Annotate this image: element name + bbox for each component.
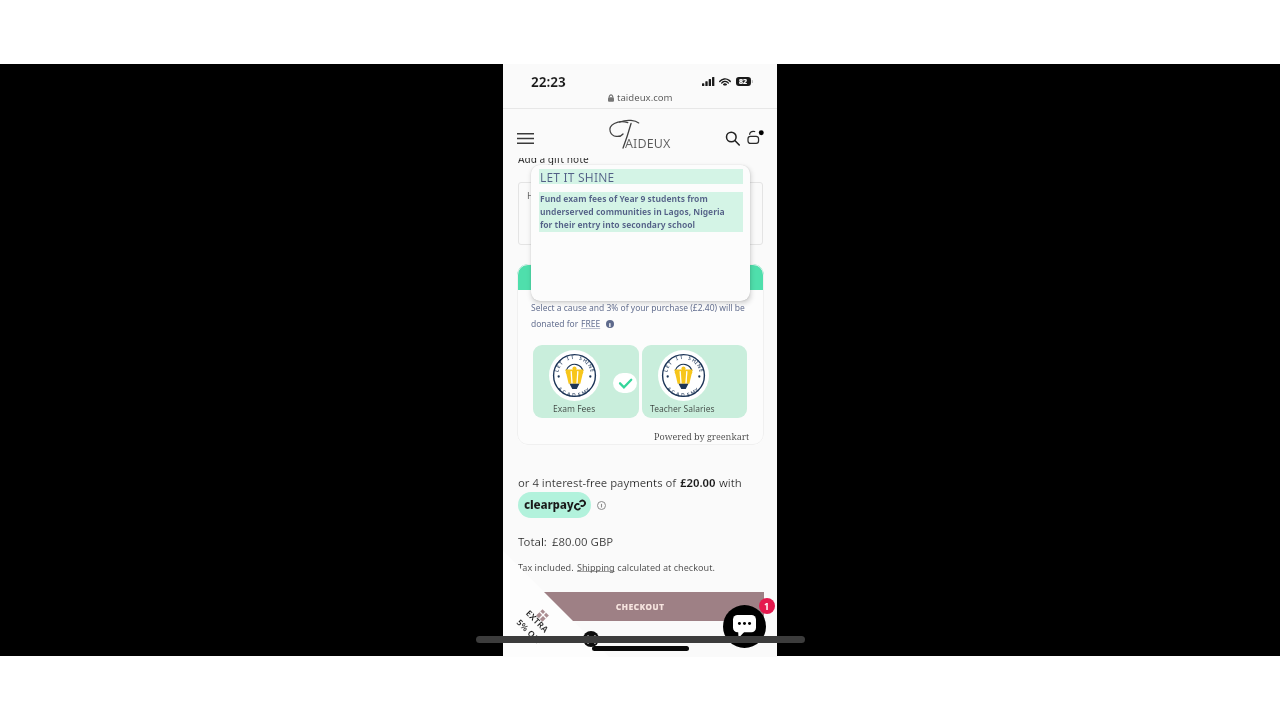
staticText: calculated at checkout. bbox=[615, 561, 715, 573]
staticText: Y bbox=[584, 385, 591, 393]
staticText: Add a gift note bbox=[518, 158, 589, 166]
button[interactable]: Menu bbox=[513, 126, 537, 150]
staticText: I bbox=[565, 354, 570, 361]
staticText: 82 bbox=[739, 77, 748, 86]
staticText: taideux.com bbox=[617, 91, 673, 104]
staticText: T bbox=[679, 353, 683, 360]
button[interactable]: clearpay bbox=[518, 492, 591, 518]
staticText: 5% OFF bbox=[514, 616, 545, 648]
staticText: 22:23 bbox=[531, 73, 566, 91]
staticText: Tax included. bbox=[518, 561, 577, 573]
staticText: with bbox=[716, 475, 742, 490]
staticText: Select a cause and 3% of your purchase (… bbox=[531, 302, 745, 314]
button[interactable]: CHECKOUT bbox=[517, 592, 764, 621]
staticText: EXTRA bbox=[523, 607, 551, 636]
staticText: A bbox=[566, 390, 572, 398]
staticText: AIDEUX bbox=[625, 135, 671, 152]
staticText: or 4 interest-free payments of bbox=[518, 475, 680, 490]
staticText: C bbox=[670, 388, 677, 396]
staticText: E bbox=[663, 363, 671, 369]
staticText: i bbox=[609, 321, 611, 328]
staticText: donated for bbox=[531, 318, 581, 330]
staticText: Total: bbox=[518, 534, 547, 550]
staticText: £80.00 GBP bbox=[552, 534, 614, 550]
staticText: D bbox=[572, 391, 576, 398]
staticText: D bbox=[681, 391, 685, 398]
staticText: CHECKOUT bbox=[616, 601, 665, 612]
staticText: LET IT SHINE bbox=[540, 169, 615, 184]
staticText: Fund exam fees of Year 9 students from u… bbox=[540, 193, 725, 231]
staticText: Y bbox=[693, 385, 700, 393]
staticText: Exam Fees bbox=[553, 403, 596, 415]
staticText: E bbox=[698, 368, 706, 373]
button[interactable]: Shipping bbox=[577, 561, 615, 573]
staticText: A bbox=[666, 385, 674, 392]
button[interactable]: More information bbox=[597, 501, 606, 510]
staticText: N bbox=[696, 362, 704, 370]
staticText: Hello bbox=[527, 189, 551, 202]
staticText: L bbox=[661, 368, 669, 373]
staticText: I bbox=[585, 359, 592, 366]
staticText: clearpay bbox=[524, 497, 574, 513]
staticText: L bbox=[552, 368, 560, 373]
button[interactable]: How it works bbox=[606, 320, 614, 328]
staticText: Powered by greenkart bbox=[654, 430, 750, 442]
button[interactable]: L bbox=[642, 345, 747, 418]
staticText: E bbox=[686, 390, 691, 398]
staticText: H bbox=[582, 356, 589, 364]
staticText: T bbox=[557, 359, 564, 366]
staticText: M bbox=[580, 388, 588, 396]
staticText: £20.00 bbox=[680, 475, 716, 490]
staticText: H bbox=[691, 356, 698, 364]
staticText: T bbox=[666, 359, 673, 366]
button[interactable]: Close bbox=[583, 631, 599, 647]
staticText: S bbox=[687, 354, 693, 361]
staticText: A bbox=[675, 390, 681, 398]
staticText: C bbox=[561, 388, 568, 396]
button[interactable]: Search bbox=[721, 127, 743, 149]
staticText: S bbox=[578, 354, 584, 361]
button[interactable]: Cart bbox=[745, 126, 767, 148]
staticText: I bbox=[694, 359, 701, 366]
staticText: I bbox=[674, 354, 679, 361]
staticText: M bbox=[689, 388, 697, 396]
staticText: Teacher Salaries bbox=[650, 403, 715, 415]
staticText: N bbox=[587, 362, 595, 370]
button[interactable]: L bbox=[533, 345, 639, 418]
button[interactable]: Chat bbox=[723, 605, 766, 648]
button[interactable]: Extra 5% off bbox=[503, 594, 573, 657]
button[interactable]: FREE bbox=[581, 318, 601, 330]
staticText: A bbox=[557, 385, 565, 392]
staticText: T bbox=[570, 353, 574, 360]
staticText: E bbox=[577, 390, 582, 398]
staticText: E bbox=[589, 368, 597, 373]
staticText: E bbox=[554, 363, 562, 369]
button[interactable]: Hello bbox=[518, 182, 763, 245]
staticText: 1 bbox=[764, 600, 770, 613]
